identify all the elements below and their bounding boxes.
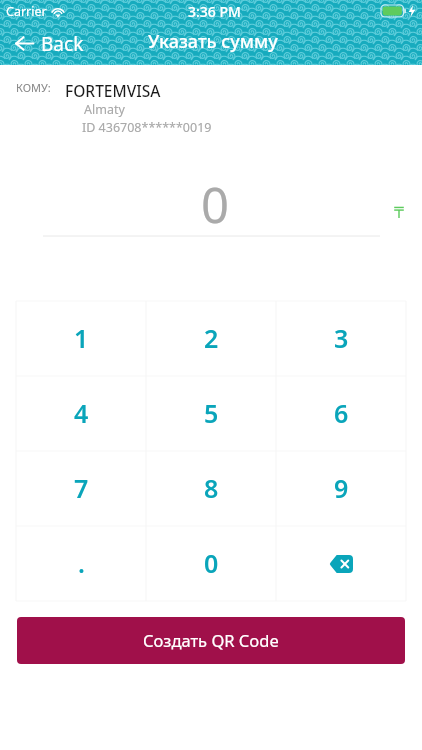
button[interactable]: 6 [276,376,406,451]
staticText: Указать сумму [148,29,278,54]
staticText: 4 [74,396,89,430]
staticText: КОМУ: [16,80,51,95]
staticText: 3:36 PM [188,2,241,21]
staticText: 0 [4,171,422,238]
button[interactable]: Создать QR Code [17,617,405,664]
other: Backspace [329,555,353,573]
button[interactable]: 3 [276,301,406,376]
staticText: 8 [204,471,219,505]
button[interactable]: 0 [146,526,276,601]
button[interactable]: 9 [276,451,406,526]
staticText: 9 [334,471,349,505]
staticText: 0 [204,546,219,580]
button[interactable]: 8 [146,451,276,526]
staticText: Almaty [84,101,125,118]
button[interactable]: 1 [16,301,146,376]
staticText: Carrier [6,3,47,20]
staticText: Создать QR Code [143,629,279,651]
staticText: 2 [204,321,219,355]
staticText: 5 [204,396,219,430]
button[interactable]: Backspace [276,526,406,601]
button[interactable]: 2 [146,301,276,376]
button[interactable]: Back [15,22,84,65]
staticText: 1 [74,321,89,355]
staticText: FORTEMVISA [65,80,161,101]
button[interactable]: 4 [16,376,146,451]
staticText: ID 436708******0019 [82,119,212,136]
button[interactable]: . [16,526,146,601]
staticText: 3 [334,321,349,355]
staticText: Back [41,31,84,57]
staticText: 6 [334,396,349,430]
staticText: . [78,546,85,580]
staticText: 7 [74,471,89,505]
button[interactable]: 7 [16,451,146,526]
button[interactable]: 5 [146,376,276,451]
